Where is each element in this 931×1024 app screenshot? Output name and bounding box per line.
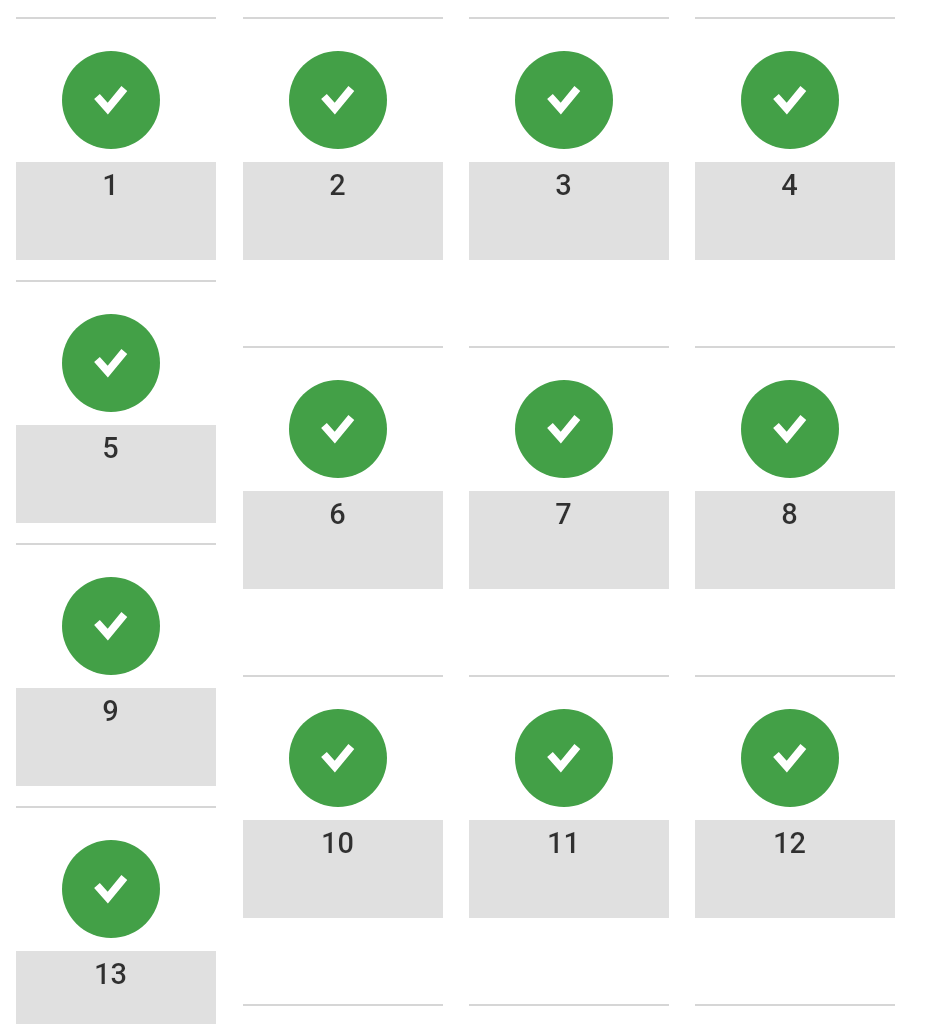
other: Completed (741, 709, 839, 807)
button[interactable]: Completed (243, 675, 443, 1004)
button[interactable]: Completed (695, 346, 895, 675)
other: Completed (62, 577, 160, 675)
other: Completed (62, 840, 160, 938)
staticText: 2 (329, 168, 346, 202)
staticText: 9 (102, 694, 119, 728)
other: Completed (741, 51, 839, 149)
staticText: 1 (102, 168, 119, 202)
button[interactable]: Completed (16, 280, 216, 543)
button[interactable]: Completed (469, 1004, 669, 1024)
other: Completed (515, 380, 613, 478)
other: Completed (741, 380, 839, 478)
button[interactable]: Completed (695, 1004, 895, 1024)
staticText: 11 (547, 826, 580, 860)
other: Completed (515, 51, 613, 149)
button[interactable]: Completed (695, 675, 895, 1004)
button[interactable]: Completed (16, 806, 216, 1024)
staticText: 4 (781, 168, 798, 202)
staticText: 8 (781, 497, 798, 531)
button[interactable]: Completed (469, 346, 669, 675)
button[interactable]: Completed (243, 17, 443, 346)
staticText: 6 (329, 497, 346, 531)
staticText: 5 (102, 431, 119, 465)
button[interactable]: Completed (243, 1004, 443, 1024)
other: Completed (62, 314, 160, 412)
button[interactable]: Completed (469, 17, 669, 346)
other: Completed (289, 51, 387, 149)
button[interactable]: Completed (16, 543, 216, 806)
staticText: 7 (555, 497, 572, 531)
staticText: 12 (773, 826, 806, 860)
staticText: 10 (321, 826, 354, 860)
other: Completed (515, 709, 613, 807)
other: Completed (62, 51, 160, 149)
button[interactable]: Completed (16, 17, 216, 280)
other: Completed (289, 380, 387, 478)
staticText: 13 (94, 957, 127, 991)
button[interactable]: Completed (469, 675, 669, 1004)
button[interactable]: Completed (695, 17, 895, 346)
other: Completed (289, 709, 387, 807)
button[interactable]: Completed (243, 346, 443, 675)
staticText: 3 (555, 168, 572, 202)
